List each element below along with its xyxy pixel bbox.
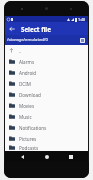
staticText: Select file bbox=[21, 25, 51, 33]
button[interactable]: Android bbox=[5, 67, 88, 78]
button[interactable]: DCIM bbox=[5, 78, 88, 89]
button[interactable]: Pictures bbox=[5, 133, 88, 144]
staticText: Movies bbox=[19, 103, 35, 109]
button[interactable]: Download bbox=[5, 89, 88, 100]
staticText: DCIM bbox=[19, 81, 31, 87]
staticText: Download bbox=[19, 92, 41, 98]
button[interactable]: Podcasts bbox=[5, 144, 88, 151]
staticText: 1:48 bbox=[78, 17, 86, 22]
button[interactable]: Storage bbox=[78, 36, 86, 44]
button[interactable]: Notifications bbox=[5, 122, 88, 133]
button[interactable]: Music bbox=[5, 111, 88, 122]
button[interactable]: Alarms bbox=[5, 56, 88, 67]
button[interactable]: Movies bbox=[5, 100, 88, 111]
staticText: /storage/emulated/0 bbox=[7, 37, 48, 43]
staticText: Pictures bbox=[19, 136, 37, 142]
button[interactable]: Recent apps bbox=[64, 151, 78, 162]
button[interactable]: .. bbox=[5, 45, 88, 56]
button[interactable]: Home bbox=[40, 151, 54, 162]
button[interactable]: Back bbox=[5, 22, 18, 35]
button[interactable]: /storage/emulated/0 bbox=[7, 37, 78, 43]
staticText: .. bbox=[19, 48, 22, 54]
staticText: Notifications bbox=[19, 125, 47, 131]
button[interactable]: Back bbox=[15, 151, 29, 162]
staticText: Music bbox=[19, 114, 32, 120]
staticText: Alarms bbox=[19, 59, 35, 65]
staticText: Podcasts bbox=[19, 145, 39, 151]
staticText: Android bbox=[19, 70, 37, 76]
